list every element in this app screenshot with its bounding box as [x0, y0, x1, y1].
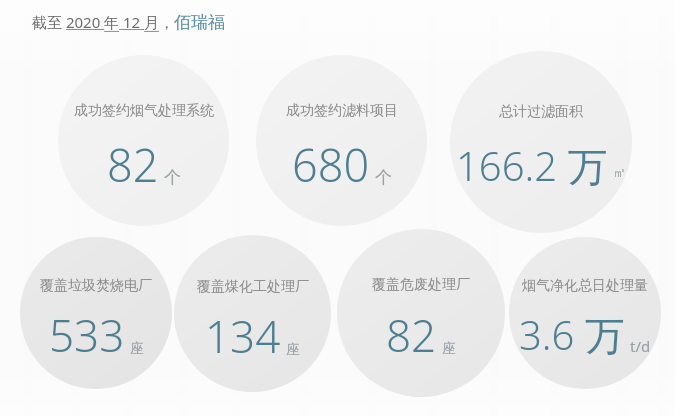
- staticText: 座: [130, 340, 144, 358]
- staticText: 134: [205, 306, 281, 366]
- staticText: 烟气净化总日处理量: [522, 277, 648, 295]
- staticText: 覆盖危废处理厂: [372, 276, 470, 294]
- staticText: 3.6 万: [519, 307, 625, 362]
- staticText: 覆盖垃圾焚烧电厂: [40, 277, 152, 295]
- button[interactable]: 总计过滤面积 166.2 万 ㎡: [450, 51, 632, 233]
- staticText: 覆盖煤化工处理厂: [197, 278, 309, 296]
- staticText: 截至 2020 年 12 月，佰瑞福: [32, 12, 226, 33]
- staticText: 680: [292, 134, 370, 195]
- button[interactable]: 成功签约烟气处理系统 82 个: [58, 55, 229, 226]
- staticText: 总计过滤面积: [499, 103, 583, 121]
- staticText: 533: [49, 305, 125, 365]
- staticText: ㎡: [613, 164, 626, 180]
- staticText: 座: [286, 341, 300, 359]
- button[interactable]: 烟气净化总日处理量 3.6 万 t/d: [509, 237, 661, 389]
- button[interactable]: 截至 2020 年 12 月，佰瑞福: [30, 10, 228, 35]
- staticText: 82: [386, 305, 437, 365]
- staticText: 166.2 万: [456, 138, 608, 193]
- staticText: 成功签约滤料项目: [286, 102, 398, 120]
- staticText: 82: [107, 134, 159, 195]
- button[interactable]: 覆盖危废处理厂 82 座: [337, 229, 505, 397]
- staticText: 个: [375, 167, 392, 188]
- staticText: 成功签约烟气处理系统: [74, 102, 214, 120]
- button[interactable]: 覆盖煤化工处理厂 134 座: [174, 235, 331, 392]
- staticText: 座: [442, 340, 456, 358]
- staticText: 个: [164, 167, 181, 188]
- button[interactable]: 覆盖垃圾焚烧电厂 533 座: [20, 237, 172, 389]
- button[interactable]: 成功签约滤料项目 680 个: [256, 55, 427, 226]
- staticText: t/d: [630, 336, 651, 356]
